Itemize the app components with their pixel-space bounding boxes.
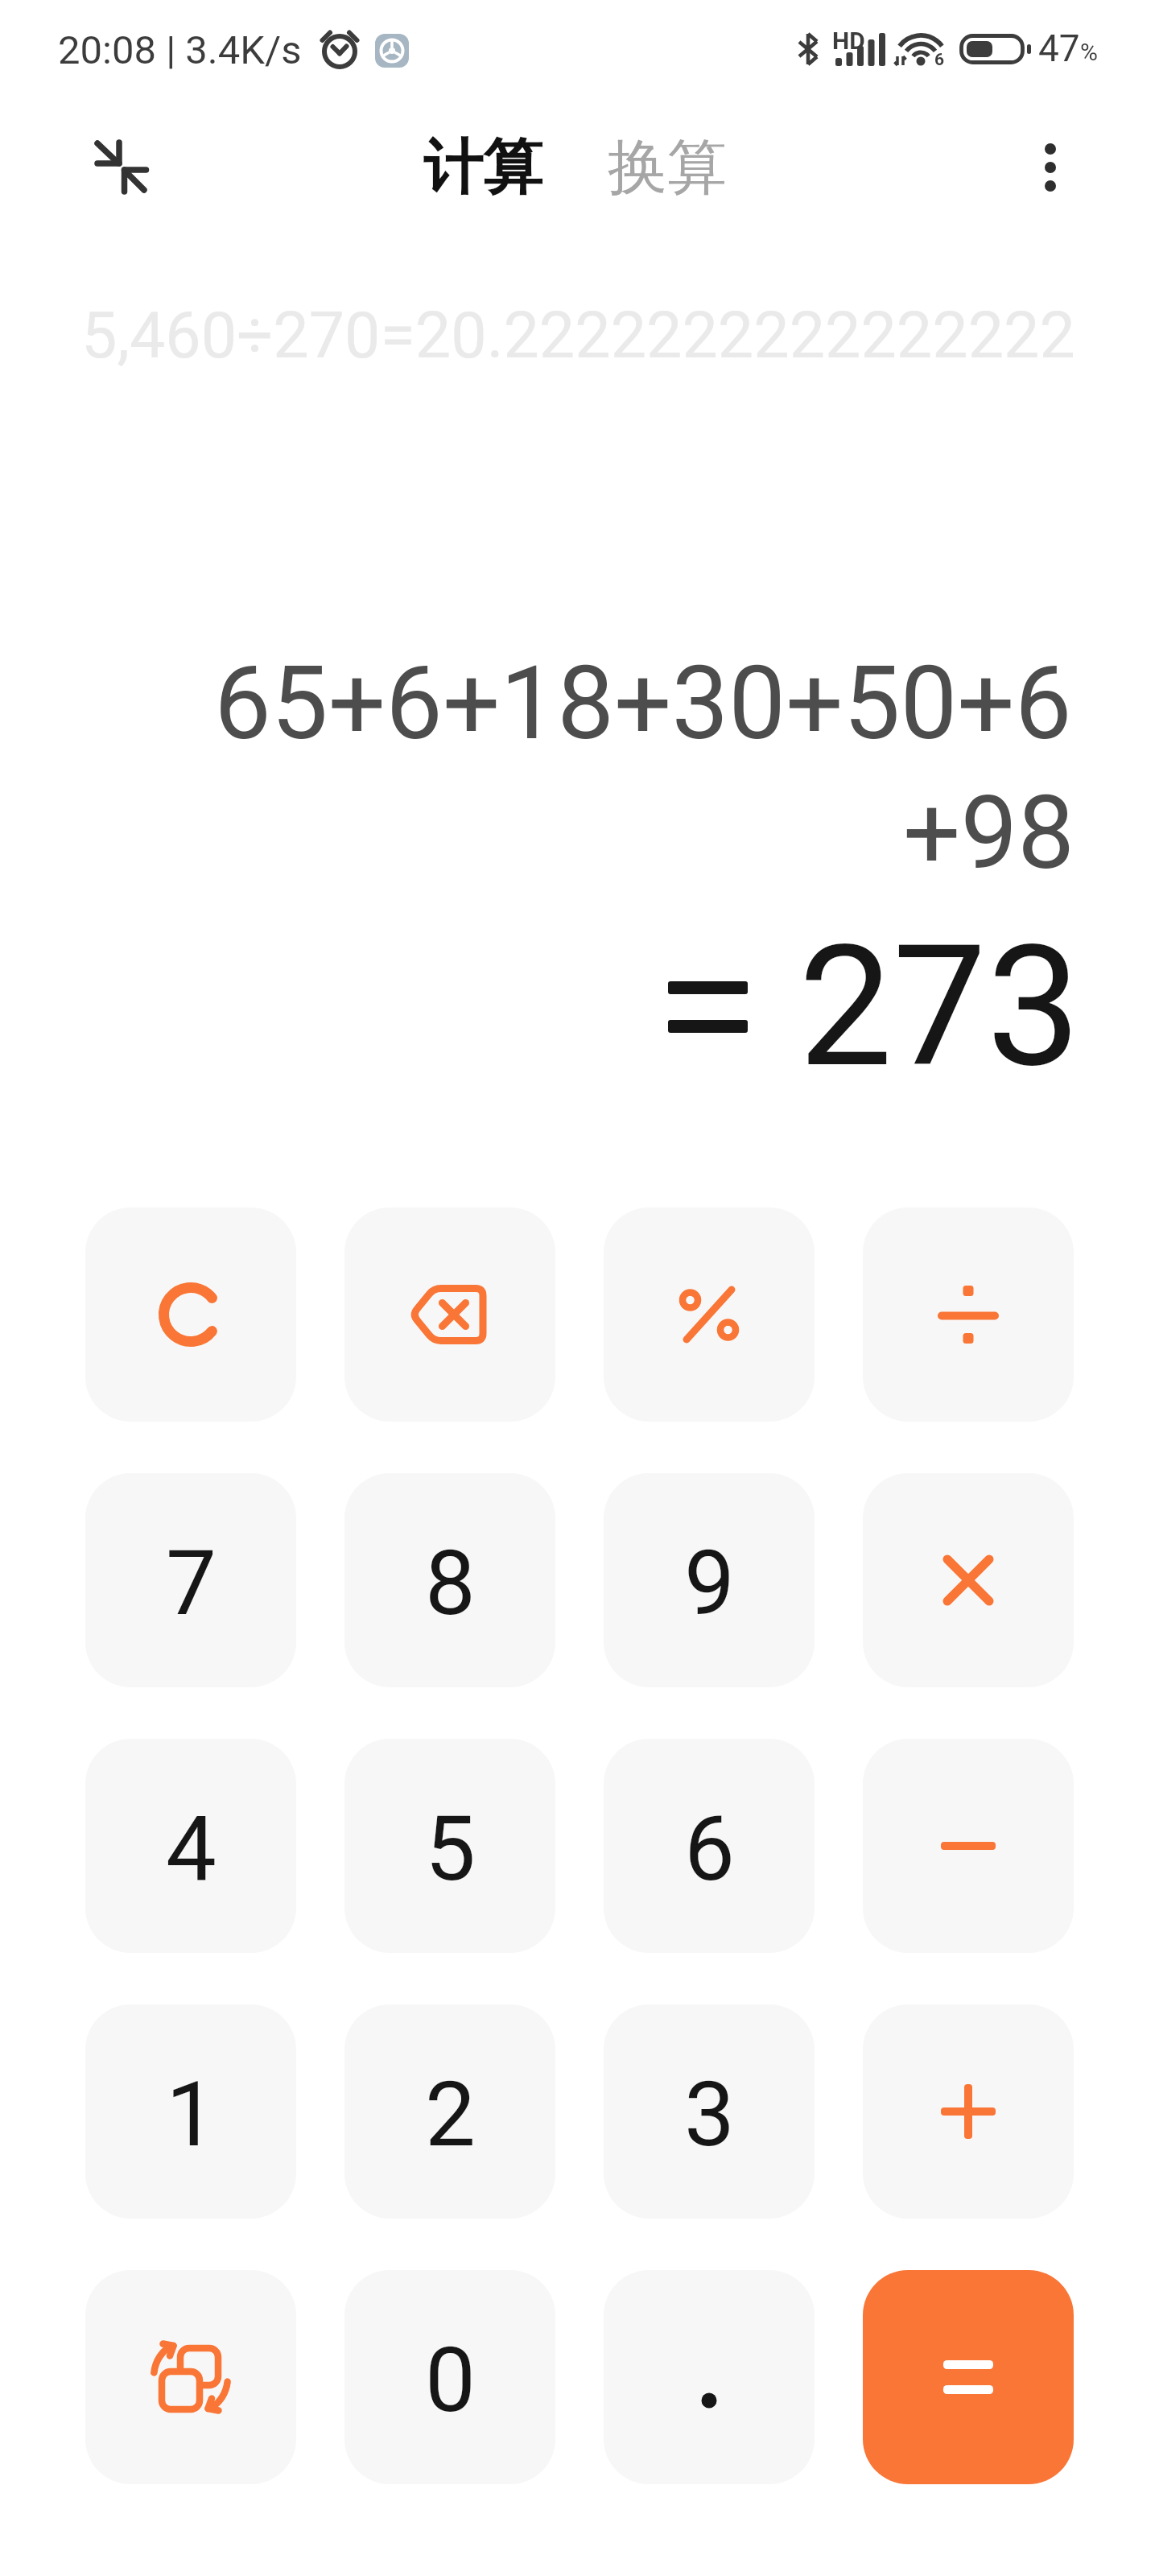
staticText: 3 [684,2062,735,2167]
staticText: 20:08 | 3.4K/s [58,27,302,73]
staticText: 5 [425,1796,476,1901]
button[interactable]: 9 [604,1473,815,1687]
button[interactable] [344,1207,555,1422]
staticText: 7 [166,1530,217,1636]
staticText: +98 [903,774,1075,893]
staticText: 8 [425,1530,476,1636]
staticText: 计算 [423,130,542,205]
staticText: 1 [166,2062,217,2167]
button[interactable]: 计算 [423,130,542,205]
staticText: 换算 [608,130,727,205]
button[interactable] [85,1207,296,1422]
staticText: 4 [166,1796,217,1901]
button[interactable]: 5 [344,1739,555,1953]
staticText: 273 [798,909,1081,1105]
staticText: 2 [425,2062,476,2167]
staticText: % [1080,38,1098,66]
button[interactable]: 8 [344,1473,555,1687]
button[interactable]: 3 [604,2004,815,2219]
staticText: 47 [1038,27,1080,70]
button[interactable]: 换算 [608,130,727,205]
button[interactable]: 2 [344,2004,555,2219]
staticText: 5,460÷270=20.2222222222222222 [81,299,1075,374]
button[interactable] [85,2270,296,2484]
button[interactable]: 0 [344,2270,555,2484]
button[interactable] [863,2004,1074,2219]
staticText: 65+6+18+30+50+6 [214,644,1072,763]
button[interactable]: 6 [604,1739,815,1953]
button[interactable] [863,1473,1074,1687]
button[interactable] [1010,127,1091,208]
staticText: 6 [934,50,945,70]
button[interactable] [863,2270,1074,2484]
staticText: 0 [425,2327,476,2433]
button[interactable]: 7 [85,1473,296,1687]
button[interactable] [80,125,161,205]
staticText: HD [832,27,865,55]
button[interactable]: 1 [85,2004,296,2219]
button[interactable] [863,1207,1074,1422]
button[interactable]: 4 [85,1739,296,1953]
staticText: 9 [684,1530,735,1636]
button[interactable] [863,1739,1074,1953]
staticText: 6 [684,1796,735,1901]
button[interactable] [604,2270,815,2484]
button[interactable] [604,1207,815,1422]
